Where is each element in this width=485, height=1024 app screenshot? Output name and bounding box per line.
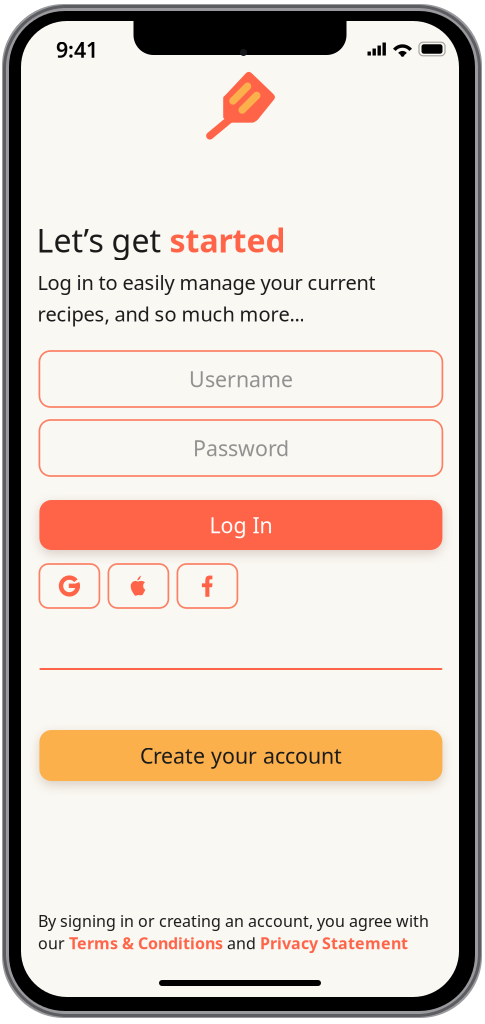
button[interactable]: Sign in with Apple [108,564,168,608]
staticText: Create your account [140,741,342,770]
button[interactable]: Sign in with Google [39,564,99,608]
staticText: Password [193,434,289,462]
staticText: Username [189,365,293,393]
staticText: Log In [209,511,272,539]
staticText: By signing in or creating an account, yo… [38,910,429,931]
button[interactable]: Log In [39,500,442,550]
staticText: our [38,932,69,954]
staticText: started [169,219,285,261]
staticText: Privacy Statement [260,932,408,954]
staticText: Terms & Conditions [69,932,223,954]
button[interactable]: Create your account [39,730,442,781]
staticText: recipes, and so much more... [37,300,304,327]
button[interactable]: Password [39,420,442,476]
button[interactable]: Sign in with Facebook [177,564,237,608]
button[interactable]: Terms & Conditions [69,932,223,954]
button[interactable]: Username [39,351,442,407]
staticText: Let’s get [36,219,169,261]
staticText: and [223,932,260,954]
staticText: Log in to easily manage your current [37,269,375,295]
button[interactable]: Privacy Statement [260,932,408,954]
staticText: 9:41 [56,35,98,64]
